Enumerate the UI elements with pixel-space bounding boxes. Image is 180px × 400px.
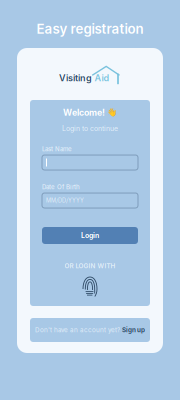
staticText: Aid: [94, 72, 109, 83]
button[interactable]: Don't have an account yet?: [30, 318, 150, 342]
button[interactable]: Log in with fingerprint: [82, 276, 98, 298]
staticText: Last Name: [42, 145, 72, 153]
staticText: Visiting: [59, 72, 92, 83]
staticText: Date Of Birth: [42, 183, 80, 191]
staticText: Login: [81, 231, 99, 240]
staticText: OR LOGIN WITH: [64, 262, 115, 270]
button[interactable]: Login: [42, 227, 138, 244]
staticText: Easy registration: [36, 21, 143, 37]
staticText: MM/DD/YYYY: [46, 197, 84, 204]
staticText: Login to continue: [62, 124, 118, 133]
staticText: Welcome!: [63, 107, 105, 118]
staticText: Sign up: [122, 326, 145, 334]
staticText: Don't have an account yet?: [35, 326, 120, 334]
staticText: 👋: [107, 108, 117, 117]
